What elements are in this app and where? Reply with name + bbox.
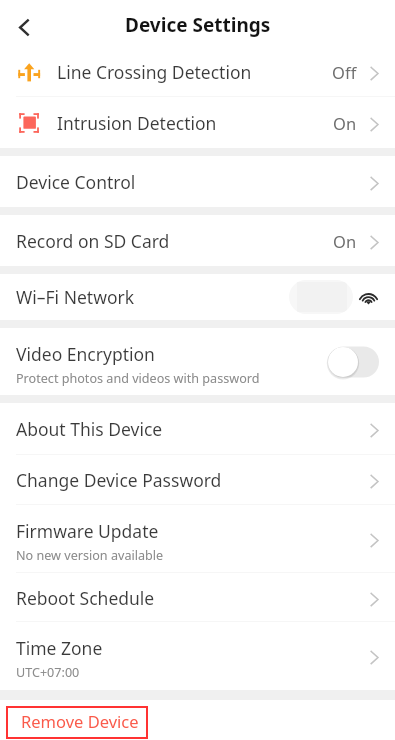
button[interactable]: Change Device Password (0, 455, 395, 505)
button[interactable]: Video Encryption (0, 328, 395, 395)
staticText: About This Device (16, 417, 163, 441)
staticText: Time Zone (16, 636, 103, 660)
button[interactable]: Wi–Fi Network (0, 274, 395, 320)
staticText: Change Device Password (16, 468, 222, 492)
button[interactable]: Back (6, 9, 42, 45)
staticText: Firmware Update (16, 519, 159, 543)
button[interactable]: Line Crossing Detection (0, 46, 395, 97)
button[interactable]: Device Control (0, 156, 395, 207)
button[interactable]: Intrusion Detection (0, 97, 395, 148)
button[interactable]: Firmware Update (0, 505, 395, 573)
staticText: On (333, 112, 357, 134)
staticText: Wi–Fi Network (16, 285, 135, 309)
button[interactable]: About This Device (0, 403, 395, 455)
button[interactable]: Reboot Schedule (0, 573, 395, 622)
staticText: No new version available (16, 547, 164, 564)
staticText: Device Control (16, 170, 136, 194)
button[interactable]: Time Zone (0, 622, 395, 690)
button[interactable]: Record on SD Card (0, 215, 395, 266)
staticText: Line Crossing Detection (57, 60, 252, 84)
staticText: Video Encryption (16, 342, 155, 366)
staticText: Off (332, 61, 357, 83)
staticText: UTC+07:00 (16, 664, 80, 681)
staticText: Protect photos and videos with password (16, 370, 260, 387)
staticText: Intrusion Detection (57, 111, 217, 135)
staticText: On (333, 230, 357, 252)
staticText: Device Settings (125, 12, 271, 38)
staticText: Reboot Schedule (16, 586, 155, 610)
button[interactable]: Toggle video encryption (327, 345, 379, 379)
staticText: Record on SD Card (16, 229, 170, 253)
staticText: Remove Device (21, 710, 139, 732)
button[interactable]: Remove Device (6, 706, 148, 739)
